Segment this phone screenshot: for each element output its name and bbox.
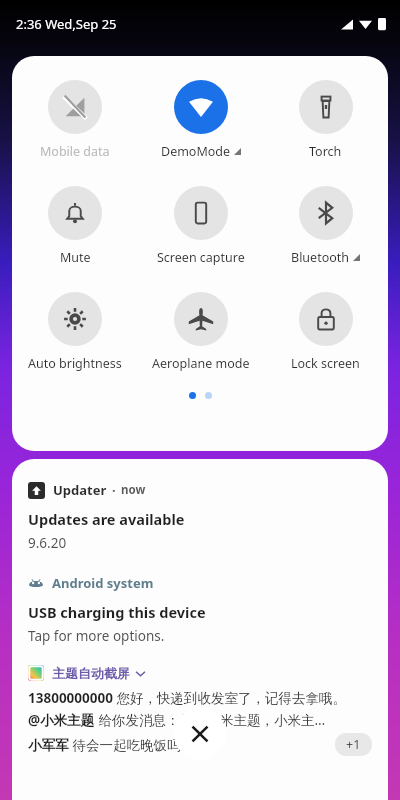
staticText: Android system xyxy=(52,574,154,592)
staticText: Updater xyxy=(53,481,107,499)
button[interactable]: Aeroplane mode xyxy=(138,290,263,374)
button[interactable]: Lock screen xyxy=(263,290,388,374)
staticText: 小军军 xyxy=(28,737,69,754)
staticText: Updates are available xyxy=(28,509,185,529)
button[interactable]: DemoMode xyxy=(138,78,263,162)
button[interactable]: Android system xyxy=(12,574,388,645)
button[interactable]: Screen capture xyxy=(138,184,263,268)
staticText: Tap for more options. xyxy=(28,627,165,645)
button[interactable]: Mute xyxy=(12,184,138,268)
staticText: DemoMode xyxy=(161,143,231,160)
staticText: 给你发消息：关注小米主题，小米主… xyxy=(95,711,326,729)
staticText: Mobile data xyxy=(40,143,110,160)
staticText: 待会一起吃晚饭吗？ xyxy=(69,736,195,754)
staticText: Lock screen xyxy=(291,355,360,372)
staticText: Torch xyxy=(309,143,342,160)
button[interactable]: Auto brightness xyxy=(12,290,138,374)
staticText: @小米主题 xyxy=(28,711,95,729)
staticText: Aeroplane mode xyxy=(152,355,250,372)
staticText: 9.6.20 xyxy=(28,534,67,552)
staticText: now xyxy=(121,482,146,498)
staticText: 主题自动截屏 xyxy=(52,665,130,681)
staticText: Screen capture xyxy=(157,249,245,266)
staticText: 您好，快递到收发室了，记得去拿哦。 xyxy=(113,689,347,707)
staticText: 2:36 Wed,Sep 25 xyxy=(16,15,117,33)
staticText: Auto brightness xyxy=(28,355,122,372)
button[interactable]: Mobile data xyxy=(12,78,138,162)
staticText: Mute xyxy=(60,249,91,266)
staticText: +1 xyxy=(346,736,361,753)
staticText: Bluetooth xyxy=(291,249,350,266)
button[interactable]: 主题自动截屏 xyxy=(12,665,388,756)
staticText: 13800000000 xyxy=(28,689,113,707)
button[interactable]: Torch xyxy=(263,78,388,162)
button[interactable]: Clear all notifications xyxy=(174,708,226,760)
staticText: · xyxy=(112,481,116,499)
staticText: USB charging this device xyxy=(28,602,206,622)
button[interactable]: Bluetooth xyxy=(263,184,388,268)
button[interactable]: Updater xyxy=(12,481,388,552)
